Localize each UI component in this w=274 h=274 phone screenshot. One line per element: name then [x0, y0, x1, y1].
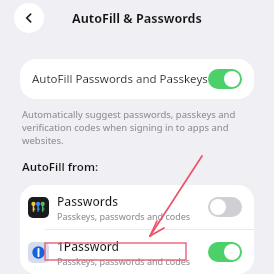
staticText: Automatically suggest passwords, passkey…	[22, 108, 252, 147]
button[interactable]: Passwords	[20, 185, 254, 229]
button[interactable]: Toggle on	[208, 242, 242, 262]
button[interactable]: Toggle on	[208, 69, 242, 89]
staticText: AutoFill Passwords and Passkeys	[32, 71, 208, 87]
staticText: AutoFill & Passwords	[72, 10, 202, 27]
staticText: AutoFill from:	[22, 159, 99, 175]
staticText: Passwords	[57, 193, 118, 209]
staticText: 1Password	[57, 238, 120, 254]
button[interactable]: 1Password	[20, 230, 254, 274]
button[interactable]: Back	[14, 3, 44, 33]
button[interactable]: Toggle off	[208, 197, 242, 217]
staticText: Passkeys, passwords and codes	[57, 255, 191, 267]
button[interactable]: AutoFill Passwords and Passkeys	[20, 59, 254, 99]
staticText: Passkeys, passwords and codes	[57, 210, 191, 222]
